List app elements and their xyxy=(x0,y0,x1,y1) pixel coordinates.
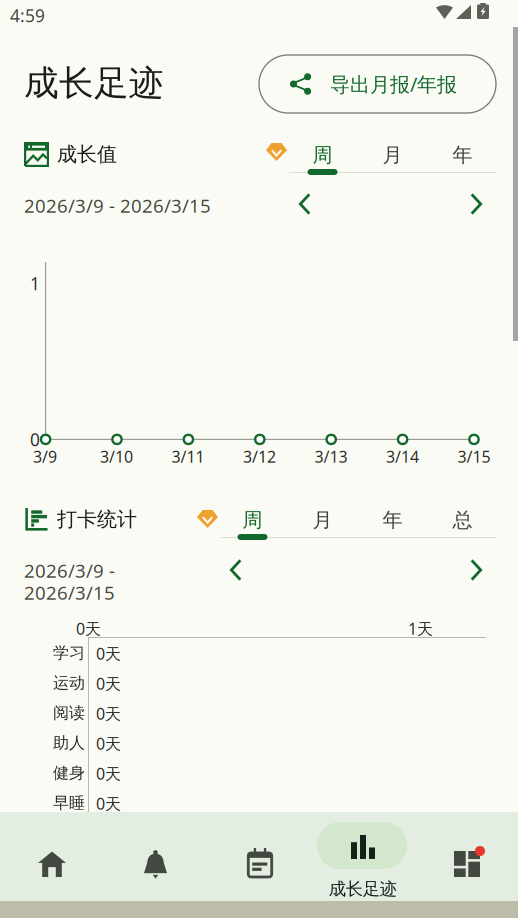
staticText: 0天 xyxy=(96,793,121,814)
staticText: 2026/3/9 - xyxy=(24,558,115,583)
staticText: 2026/3/15 xyxy=(24,580,115,605)
staticText: 0天 xyxy=(96,763,121,784)
staticText: 成长值 xyxy=(57,142,117,167)
button[interactable]: 年 xyxy=(427,140,497,180)
staticText: 0天 xyxy=(96,703,121,724)
button[interactable]: 周 xyxy=(287,140,357,180)
button[interactable]: 提醒 xyxy=(104,812,207,901)
staticText: 0天 xyxy=(96,643,121,664)
staticText: 早睡 xyxy=(53,793,85,813)
staticText: 月 xyxy=(312,508,332,532)
button[interactable]: 上一周 xyxy=(285,182,325,226)
staticText: 3/13 xyxy=(314,446,347,467)
staticText: 年 xyxy=(382,508,402,532)
button[interactable]: 总 xyxy=(427,505,497,545)
staticText: 运动 xyxy=(53,673,85,693)
staticText: 4:59 xyxy=(10,4,45,27)
button[interactable]: 年 xyxy=(357,505,427,545)
button[interactable]: 月 xyxy=(287,505,357,545)
staticText: 1天 xyxy=(408,618,433,639)
staticText: 0天 xyxy=(96,733,121,754)
staticText: 0天 xyxy=(76,618,101,639)
staticText: 阅读 xyxy=(53,703,85,723)
staticText: 周 xyxy=(312,143,332,167)
button[interactable]: 更多 xyxy=(414,812,518,901)
staticText: 年 xyxy=(452,143,472,167)
staticText: 0 xyxy=(30,428,40,451)
staticText: 3/11 xyxy=(171,446,204,467)
button[interactable]: 下一周 xyxy=(456,548,496,592)
button[interactable]: 首页 xyxy=(0,812,104,901)
staticText: 0天 xyxy=(96,673,121,694)
staticText: 健身 xyxy=(53,763,85,783)
staticText: 3/9 xyxy=(33,446,57,467)
button[interactable]: 日程 xyxy=(207,812,311,901)
button[interactable]: 上一周 xyxy=(216,548,256,592)
staticText: 助人 xyxy=(53,733,85,753)
button[interactable]: 成长足迹 xyxy=(311,812,414,901)
button[interactable]: 导出月报/年报 xyxy=(259,55,496,113)
staticText: 3/12 xyxy=(243,446,276,467)
staticText: 3/10 xyxy=(100,446,133,467)
staticText: 成长足迹 xyxy=(24,62,164,105)
staticText: 周 xyxy=(242,508,262,532)
staticText: 导出月报/年报 xyxy=(330,71,457,97)
button[interactable]: 下一周 xyxy=(456,182,496,226)
staticText: 3/15 xyxy=(457,446,490,467)
button[interactable]: 周 xyxy=(217,505,287,545)
staticText: 学习 xyxy=(53,643,85,663)
staticText: 打卡统计 xyxy=(57,507,137,532)
staticText: 1 xyxy=(30,272,40,295)
staticText: 2026/3/9 - 2026/3/15 xyxy=(24,193,211,218)
staticText: 3/14 xyxy=(386,446,419,467)
staticText: 月 xyxy=(382,143,402,167)
staticText: 成长足迹 xyxy=(329,878,397,900)
button[interactable]: 月 xyxy=(357,140,427,180)
staticText: 总 xyxy=(452,508,472,532)
